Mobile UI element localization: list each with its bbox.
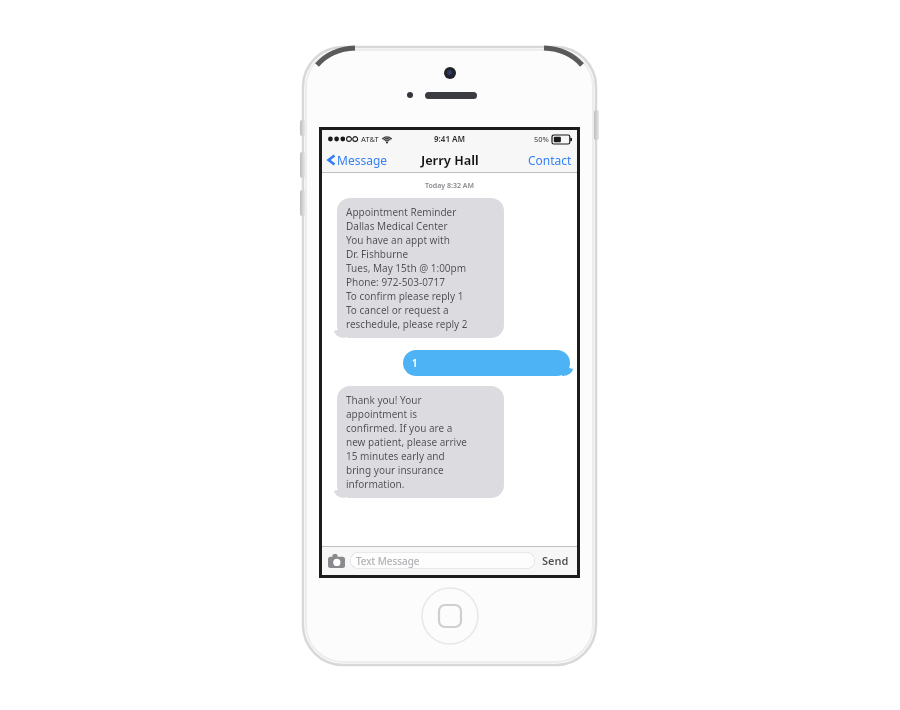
staticText: reschedule, please reply 2 [346, 317, 468, 331]
button[interactable]: Message [322, 149, 394, 171]
button[interactable]: Send [540, 550, 571, 571]
staticText: Dr. Fishburne [346, 247, 409, 261]
button[interactable]: Camera [328, 554, 345, 568]
staticText: AT&T [361, 134, 379, 144]
button[interactable]: 1 [403, 350, 570, 376]
staticText: 9:41 AM [434, 133, 466, 144]
button[interactable]: Thank you! Your [337, 386, 504, 498]
staticText: You have an appt with [346, 233, 450, 247]
staticText: Today 8:32 AM [322, 181, 577, 191]
staticText: Text Message [356, 554, 420, 568]
staticText: Phone: 972-503-0717 [346, 275, 446, 289]
button[interactable]: Home [421, 587, 479, 645]
staticText: bring your insurance [346, 463, 444, 477]
staticText: new patient, please arrive [346, 435, 467, 449]
staticText: information. [346, 477, 405, 491]
staticText: Appointment Reminder [346, 205, 457, 219]
staticText: Dallas Medical Center [346, 219, 448, 233]
staticText: 15 minutes early and [346, 449, 445, 463]
staticText: 1 [412, 356, 418, 370]
staticText: Send [542, 553, 569, 568]
staticText: confirmed. If you are a [346, 421, 453, 435]
button[interactable]: Contact [523, 149, 577, 171]
staticText: Contact [528, 152, 572, 168]
button[interactable]: Appointment Reminder [337, 198, 504, 338]
staticText: Jerry Hall [421, 152, 479, 169]
staticText: Tues, May 15th @ 1:00pm [346, 261, 467, 275]
staticText: Thank you! Your [346, 393, 422, 407]
staticText: To confirm please reply 1 [346, 289, 464, 303]
button[interactable]: Text Message [350, 552, 535, 569]
staticText: 50% [534, 134, 549, 144]
staticText: Message [337, 152, 388, 168]
staticText: appointment is [346, 407, 418, 421]
staticText: To cancel or request a [346, 303, 449, 317]
